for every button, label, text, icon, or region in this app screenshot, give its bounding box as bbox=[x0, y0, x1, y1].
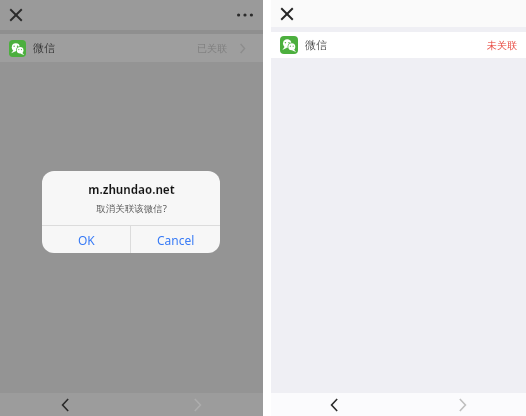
button[interactable]: OK bbox=[42, 226, 130, 253]
staticText: 已关联 bbox=[197, 42, 227, 55]
button[interactable]: Forward bbox=[450, 393, 475, 416]
staticText: m.zhundao.net bbox=[88, 182, 175, 198]
button[interactable]: More options bbox=[232, 2, 258, 28]
staticText: 微信 bbox=[33, 41, 55, 55]
staticText: Cancel bbox=[157, 232, 195, 248]
button[interactable]: Close bbox=[5, 4, 27, 26]
button[interactable]: Close bbox=[276, 3, 298, 25]
button[interactable]: 微信 bbox=[0, 34, 263, 62]
button[interactable]: Cancel bbox=[131, 226, 220, 253]
staticText: 未关联 bbox=[487, 39, 517, 52]
button[interactable]: Back bbox=[322, 393, 347, 416]
staticText: 微信 bbox=[305, 38, 327, 52]
button[interactable]: 微信 bbox=[271, 32, 526, 58]
staticText: OK bbox=[78, 232, 95, 248]
staticText: 取消关联该微信? bbox=[96, 202, 167, 215]
button[interactable]: Back bbox=[53, 393, 78, 416]
